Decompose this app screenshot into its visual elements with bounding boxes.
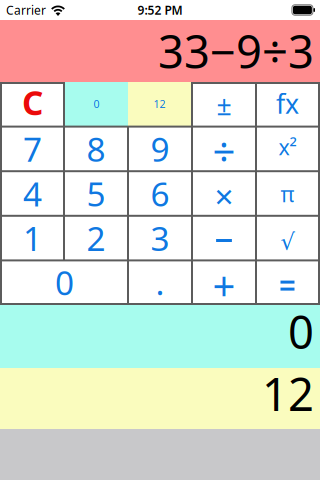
staticText: Carrier [6,2,46,18]
button[interactable]: 6 [129,172,191,215]
staticText: x² [278,133,296,161]
button[interactable]: 7 [2,128,63,170]
staticText: 2 [86,216,105,260]
staticText: 0 [93,97,99,111]
button[interactable]: x² [257,128,318,170]
staticText: π [280,180,294,208]
staticText: ÷ [212,124,235,177]
button[interactable]: 4 [2,172,63,215]
staticText: 9 [150,127,169,171]
staticText: × [214,174,233,218]
staticText: + [212,258,235,311]
button[interactable]: fx [257,84,318,126]
staticText: 12 [153,97,165,111]
button[interactable]: √ [257,217,318,259]
staticText: 0 [55,260,74,304]
staticText: 1 [23,216,42,260]
staticText: 8 [86,127,105,171]
staticText: C [22,80,43,124]
staticText: 4 [23,171,42,216]
button[interactable]: 9 [129,128,191,170]
button[interactable]: 0 [2,261,127,303]
button[interactable]: π [257,172,318,215]
button[interactable]: 0 [65,82,128,126]
button[interactable]: ± [193,84,255,126]
button[interactable]: 5 [65,172,127,215]
button[interactable]: . [129,261,191,303]
staticText: 5 [86,171,105,216]
staticText: 33−9÷3 [158,21,314,81]
button[interactable]: ÷ [193,128,255,170]
button[interactable]: 8 [65,128,127,170]
button[interactable] [193,217,255,259]
staticText: . [155,260,164,304]
button[interactable]: 12 [128,82,191,126]
button[interactable]: 2 [65,217,127,259]
button[interactable]: C [2,84,63,126]
staticText: 7 [23,127,42,171]
staticText: fx [276,86,299,121]
staticText: 3 [150,216,169,260]
staticText: 12 [262,363,314,424]
staticText: 9:52 PM [137,2,182,18]
staticText: √ [280,229,294,254]
button[interactable] [257,261,318,303]
staticText: 6 [150,171,169,216]
button[interactable]: 3 [129,217,191,259]
button[interactable]: × [193,172,255,215]
staticText: 0 [288,301,314,362]
button[interactable]: + [193,261,255,303]
button[interactable]: 1 [2,217,63,259]
staticText: ± [216,87,231,122]
